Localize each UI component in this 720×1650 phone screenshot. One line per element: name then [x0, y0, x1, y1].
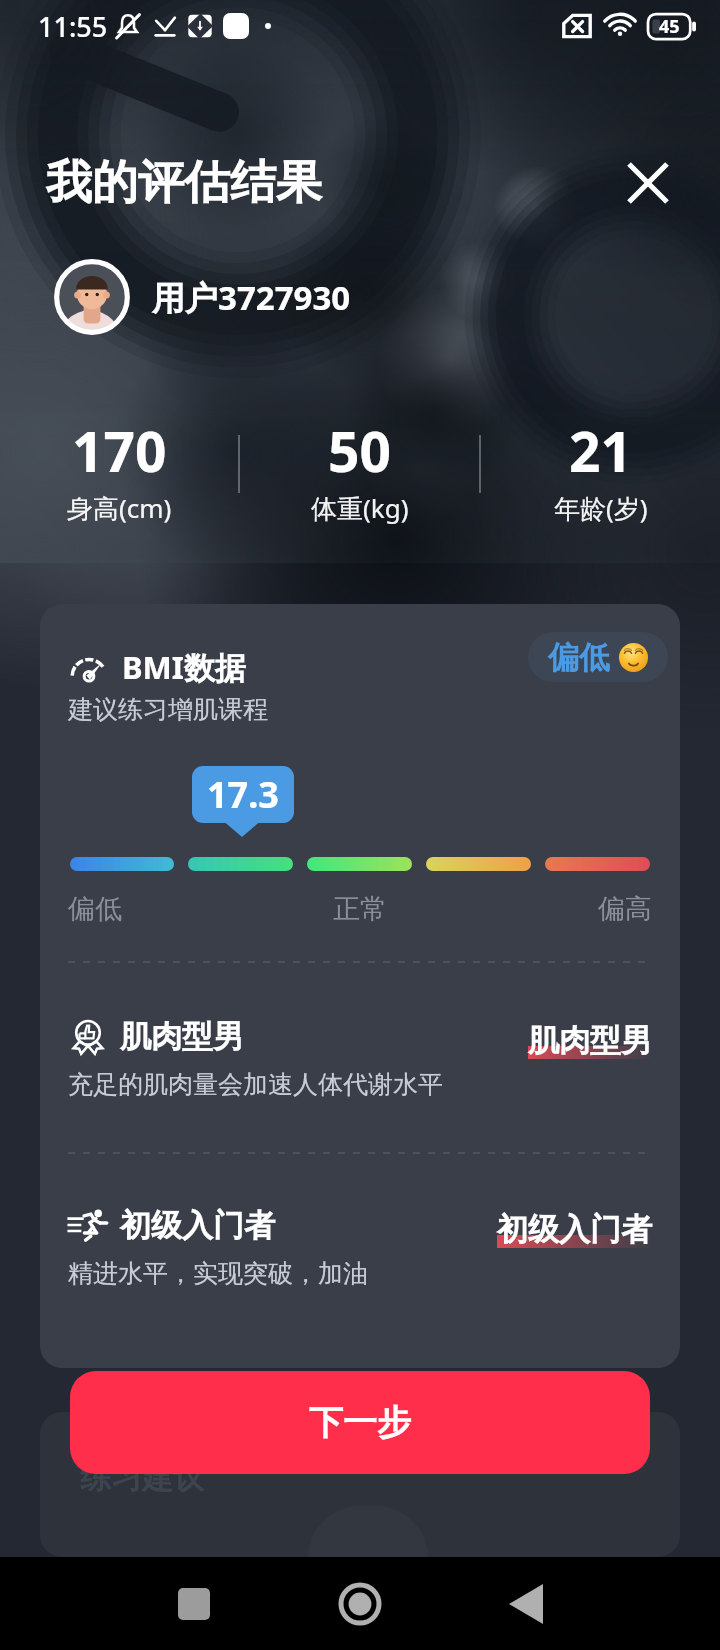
button[interactable]: Recents: [146, 1557, 242, 1650]
staticText: 充足的肌肉量会加速人体代谢水平: [68, 1069, 443, 1100]
staticText: 建议练习增肌课程: [68, 694, 268, 725]
staticText: BMI数据: [122, 646, 246, 688]
button[interactable]: Home: [312, 1557, 408, 1650]
staticText: 初级入门者: [497, 1210, 652, 1249]
staticText: 偏低: [68, 892, 122, 926]
staticText: 精进水平，实现突破，加油: [68, 1258, 368, 1289]
staticText: 45: [659, 14, 680, 39]
staticText: 170: [72, 413, 167, 488]
staticText: 偏低: [548, 638, 610, 677]
staticText: 身高(cm): [67, 490, 172, 526]
staticText: 21: [569, 413, 632, 488]
staticText: 17.3: [207, 770, 279, 819]
staticText: 用户3727930: [152, 275, 351, 320]
button[interactable]: 偏低: [528, 632, 668, 682]
staticText: 肌肉型男: [528, 1021, 652, 1060]
button[interactable]: Close: [612, 147, 684, 219]
staticText: 11:55: [38, 8, 108, 45]
staticText: 年龄(岁): [554, 490, 648, 526]
button[interactable]: Back: [478, 1557, 574, 1650]
staticText: 练习建议: [80, 1458, 204, 1497]
staticText: 初级入门者: [120, 1206, 275, 1245]
staticText: 我的评估结果: [46, 154, 322, 212]
staticText: 正常: [333, 892, 387, 926]
staticText: 偏高: [598, 892, 652, 926]
staticText: 50: [328, 413, 391, 488]
staticText: 体重(kg): [311, 490, 409, 526]
button[interactable]: 下一步: [70, 1371, 650, 1474]
staticText: 肌肉型男: [120, 1017, 244, 1056]
staticText: 下一步: [309, 1401, 411, 1444]
